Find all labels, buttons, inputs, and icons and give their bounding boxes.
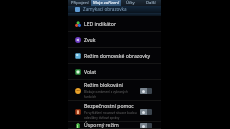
button[interactable]: Režim domovské obrazovky <box>68 48 161 64</box>
button[interactable]: Úsporný režim <box>68 122 161 129</box>
button[interactable]: LED indikátor <box>68 16 161 32</box>
button[interactable]: Toggle <box>140 109 152 115</box>
button[interactable]: Zvuk <box>68 32 161 48</box>
staticText: Moje zařízení <box>93 0 119 6</box>
staticText: Volat <box>84 69 97 76</box>
staticText: Blokuje oznámení z vybraných funkcích <box>84 90 128 99</box>
staticText: Režim domovské obrazovky <box>84 53 151 60</box>
button[interactable]: Toggle <box>140 88 152 94</box>
staticText: Zamykací obrazovka <box>83 6 127 12</box>
button[interactable]: Moje zařízení <box>91 0 121 6</box>
button[interactable]: Připojení <box>68 0 91 6</box>
staticText: Účty <box>126 0 135 6</box>
button[interactable]: Zamykací obrazovka <box>68 6 161 16</box>
button[interactable]: Toggle <box>140 123 152 129</box>
button[interactable]: Účty <box>121 0 140 6</box>
staticText: Bezpečnostní pomoc <box>84 103 134 110</box>
staticText: Po vyhlášení nouzové situace budou odesí… <box>84 111 137 120</box>
button[interactable]: Bezpečnostní pomoc <box>68 101 161 122</box>
staticText: Připojení <box>71 0 89 6</box>
staticText: Režim blokování <box>84 82 123 89</box>
staticText: Úsporný režim <box>84 122 119 129</box>
staticText: LED indikátor <box>84 21 117 28</box>
staticText: Další <box>146 0 156 6</box>
staticText: Zvuk <box>84 37 96 44</box>
button[interactable]: Volat <box>68 64 161 80</box>
button[interactable]: Režim blokování <box>68 80 161 101</box>
button[interactable]: Další <box>140 0 161 6</box>
